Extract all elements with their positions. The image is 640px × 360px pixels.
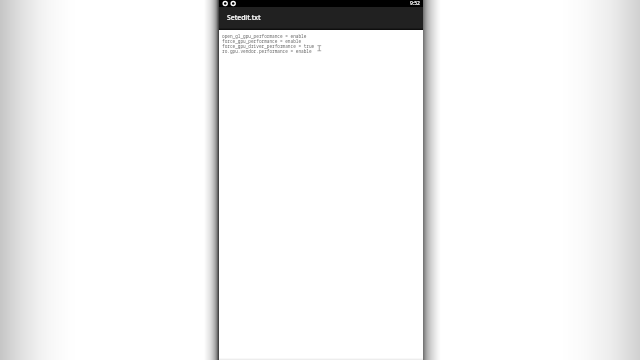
button[interactable]: open_gl_gpu_performance = enable force_g… [222,33,426,54]
button[interactable]: Setedit.txt [219,7,423,30]
other: Text cursor [317,45,322,52]
other: Notification icons [219,0,423,7]
staticText: Setedit.txt [227,13,261,22]
staticText: 9:52 [410,0,420,7]
